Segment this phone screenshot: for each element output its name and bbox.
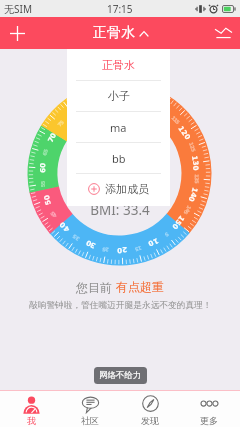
button[interactable]: 正骨水 [93,24,148,42]
staticText: 更多 [200,415,218,426]
staticText: 无SIM [4,2,32,16]
staticText: 正骨水 [93,24,135,42]
button[interactable]: 小子 [67,81,170,111]
staticText: BMI: 33.4 [0,201,240,219]
button[interactable]: Chart [206,17,240,49]
staticText: 正骨水 [102,58,135,72]
button[interactable]: 发现 [121,393,179,426]
staticText: 发现 [141,415,159,426]
staticText: 有点超重 [116,279,164,294]
button[interactable]: 社区 [61,393,119,426]
staticText: ma [110,120,127,135]
staticText: 小子 [108,89,130,103]
staticText: 我 [27,415,36,426]
button[interactable]: 我 [2,393,60,426]
staticText: 社区 [81,415,99,426]
staticText: 17:15 [107,2,133,16]
button[interactable]: 正骨水 [67,49,170,80]
staticText: 敲响警钟啦，管住嘴迈开腿是永远不变的真理！ [29,300,212,311]
button[interactable]: bb [67,143,170,173]
staticText: 网络不给力 [99,370,142,381]
button[interactable]: 添加成员 [67,174,170,204]
staticText: 您目前 [76,279,116,295]
staticText: bb [112,151,126,166]
button[interactable]: Add [0,17,34,49]
staticText: 添加成员 [105,182,149,196]
button[interactable]: 更多 [180,393,238,426]
button[interactable]: ma [67,112,170,142]
